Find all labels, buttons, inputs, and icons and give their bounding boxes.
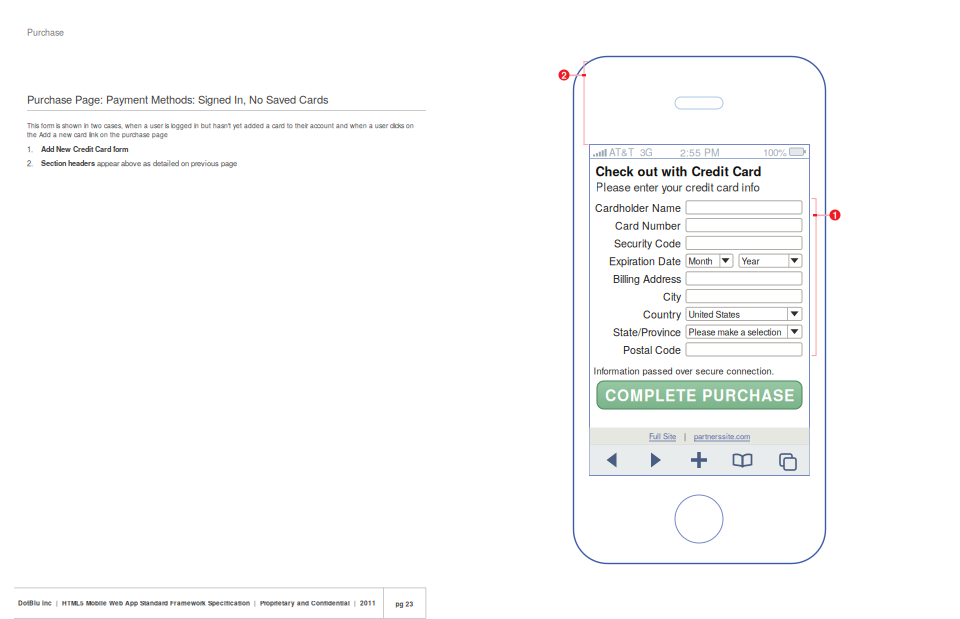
staticText: Card Number <box>615 218 681 233</box>
staticText: United States <box>688 308 739 320</box>
staticText: 2011 <box>360 598 376 608</box>
staticText: Month <box>688 254 712 267</box>
staticText: 1 <box>832 208 837 222</box>
staticText: | <box>250 598 260 608</box>
staticText: State/Province <box>613 324 681 339</box>
staticText: appear above as detailed on previous pag… <box>95 158 237 168</box>
button[interactable]: COMPLETE PURCHASE <box>597 381 802 409</box>
button[interactable]: Pages <box>0 0 960 619</box>
staticText: Add New Credit Card form <box>41 144 129 154</box>
button[interactable]: Bookmarks <box>0 0 960 619</box>
staticText: Check out with Credit Card <box>595 162 761 180</box>
staticText: COMPLETE PURCHASE <box>605 384 794 406</box>
button[interactable]: Forward <box>0 0 960 619</box>
staticText: HTML5 Mobile Web App Standard Framework … <box>62 598 250 608</box>
staticText: Please make a selection <box>688 325 781 338</box>
staticText: Proprietary and Confidential <box>260 598 350 608</box>
staticText: Security Code <box>614 235 681 250</box>
staticText: Purchase Page: Payment Methods: Signed I… <box>27 91 328 107</box>
staticText: Billing Address <box>613 271 681 286</box>
button[interactable]: Full Site <box>649 431 676 441</box>
staticText: Please enter your credit card info <box>595 178 759 195</box>
staticText: DotBlu inc <box>18 598 52 608</box>
staticText: Purchase <box>27 26 64 38</box>
staticText: Full Site <box>649 431 676 441</box>
button[interactable]: Back <box>0 0 960 619</box>
staticText: 2 <box>561 68 566 82</box>
staticText: Expiration Date <box>609 253 681 268</box>
staticText: Year <box>741 254 759 267</box>
staticText: pg 23 <box>395 599 413 609</box>
staticText: 2. <box>27 158 33 168</box>
staticText: Information passed over secure connectio… <box>593 364 774 377</box>
staticText: Section headers <box>41 158 95 168</box>
staticText: 100% <box>763 145 787 159</box>
staticText: | <box>350 598 360 608</box>
staticText: 1. <box>27 144 33 154</box>
staticText: Cardholder Name <box>595 200 681 215</box>
staticText: | <box>676 431 694 441</box>
staticText: the Add a new card link on the purchase … <box>27 130 168 139</box>
staticText: AT&T 3G <box>609 145 653 159</box>
staticText: partnerssite.com <box>694 431 750 441</box>
staticText: | <box>52 598 62 608</box>
staticText: City <box>663 289 681 304</box>
button[interactable]: partnerssite.com <box>694 431 750 441</box>
button[interactable]: Add bookmark <box>0 0 960 619</box>
staticText: This form is shown in two cases, when a … <box>27 121 414 130</box>
staticText: 2:55 PM <box>680 145 719 159</box>
staticText: Postal Code <box>623 342 681 357</box>
staticText: Country <box>643 306 681 321</box>
